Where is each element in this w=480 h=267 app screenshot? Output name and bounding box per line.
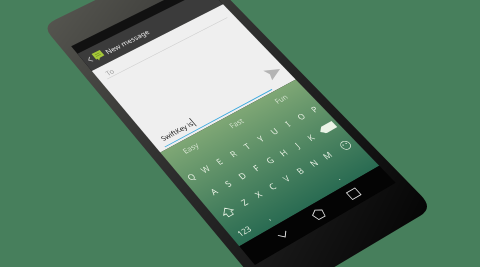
button[interactable] [0, 0, 480, 267]
